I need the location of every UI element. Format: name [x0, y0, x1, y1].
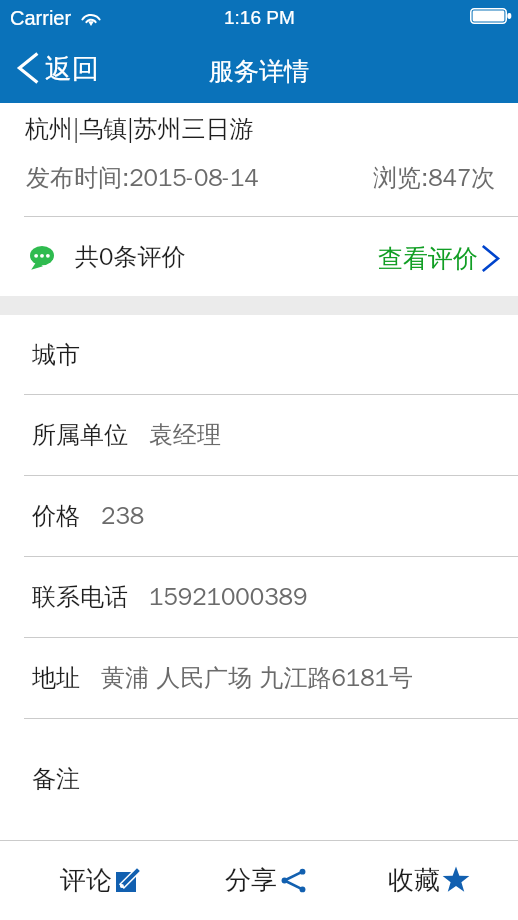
button[interactable]: 联系电话 — [0, 556, 518, 637]
staticText: 地址 — [32, 663, 80, 693]
staticText: 杭州|乌镇|苏州三日游 — [25, 114, 254, 144]
other: Battery — [470, 8, 512, 24]
staticText: 服务详情 — [209, 56, 309, 87]
staticText: 15921000389 — [149, 582, 308, 612]
button[interactable]: 所属单位 — [0, 394, 518, 475]
button[interactable]: 分享 — [205, 855, 326, 905]
staticText: 浏览:847次 — [373, 163, 496, 193]
button[interactable]: 评论 — [40, 855, 161, 905]
staticText: Carrier — [10, 7, 72, 29]
staticText: 价格 — [32, 501, 80, 531]
button[interactable]: 备注 — [0, 718, 518, 839]
staticText: 查看评价 — [378, 243, 478, 274]
button[interactable]: Back — [0, 37, 115, 100]
staticText: 备注 — [32, 764, 80, 794]
staticText: 袁经理 — [149, 420, 221, 450]
staticText: 城市 — [32, 340, 80, 370]
staticText: 黄浦 人民广场 九江路6181号 — [101, 663, 413, 693]
staticText: 收藏 — [388, 864, 440, 897]
button[interactable]: 城市 — [0, 315, 518, 394]
staticText: 返回 — [45, 52, 99, 86]
button[interactable]: 收藏 — [368, 855, 490, 905]
button[interactable]: 价格 — [0, 475, 518, 556]
staticText: 1:16 PM — [224, 7, 295, 28]
button[interactable]: 地址 — [0, 637, 518, 718]
staticText: 评论 — [60, 864, 112, 897]
staticText: 共0条评价 — [75, 242, 186, 272]
staticText: 联系电话 — [32, 582, 128, 612]
staticText: 分享 — [225, 864, 277, 897]
staticText: 发布时间:2015-08-14 — [26, 163, 259, 193]
staticText: 所属单位 — [32, 420, 128, 450]
other: Back — [18, 52, 38, 84]
staticText: 238 — [101, 501, 145, 531]
button[interactable]: 共0条评价 — [0, 217, 518, 296]
